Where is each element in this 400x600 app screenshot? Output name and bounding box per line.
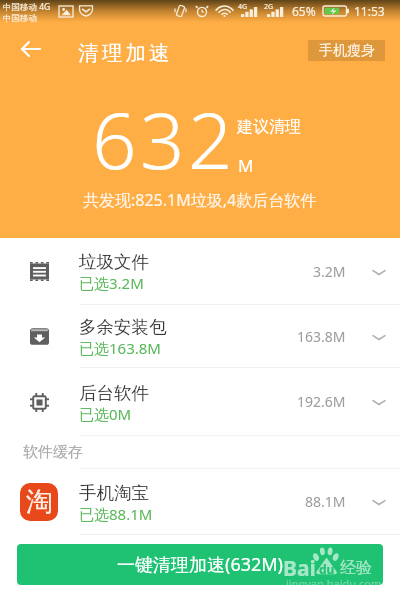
staticText: 一键清理加速(632M): [117, 552, 284, 577]
staticText: 已选163.8M: [79, 338, 161, 358]
button[interactable]: 淘: [0, 469, 400, 534]
staticText: 共发现:825.1M垃圾,4款后台软件: [83, 189, 317, 211]
staticText: 软件缓存: [23, 443, 83, 462]
staticText: 632: [92, 86, 237, 192]
staticText: 经验: [340, 558, 372, 578]
staticText: 88.1M: [305, 492, 346, 511]
staticText: M: [238, 154, 254, 177]
staticText: 淘: [26, 485, 53, 519]
button[interactable]: 多余安装包: [0, 305, 400, 367]
staticText: 已选3.2M: [79, 273, 144, 293]
staticText: 192.6M: [297, 392, 346, 411]
staticText: 中国移动 4G: [3, 1, 51, 13]
staticText: 手机淘宝: [79, 482, 149, 504]
staticText: 后台软件: [79, 382, 149, 404]
staticText: 2G: [264, 2, 274, 12]
staticText: 65%: [292, 3, 316, 19]
button[interactable]: 一键清理加速(632M): [17, 544, 383, 585]
staticText: 中国移动: [3, 13, 37, 23]
staticText: 清理加速: [78, 40, 173, 66]
staticText: jingyan.baidu.com: [286, 576, 382, 591]
staticText: 3.2M: [313, 262, 346, 281]
staticText: 垃圾文件: [79, 251, 149, 273]
staticText: 已选0M: [79, 404, 132, 424]
staticText: 4G: [238, 2, 248, 12]
staticText: 建议清理: [237, 117, 301, 137]
staticText: 11:53: [354, 3, 385, 19]
staticText: du: [319, 561, 335, 574]
button[interactable]: Back: [17, 35, 45, 63]
button[interactable]: 后台软件: [0, 368, 400, 435]
staticText: 多余安装包: [79, 316, 167, 338]
staticText: Bai: [283, 554, 316, 583]
staticText: 163.8M: [297, 327, 346, 346]
staticText: 手机瘦身: [319, 42, 375, 60]
button[interactable]: 手机瘦身: [308, 40, 385, 61]
staticText: 已选88.1M: [79, 504, 153, 524]
button[interactable]: 垃圾文件: [0, 238, 400, 304]
